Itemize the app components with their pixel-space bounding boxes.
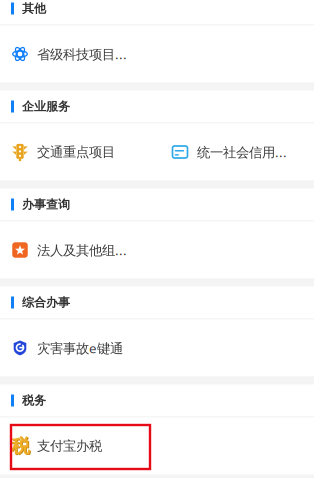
button[interactable]: 省级科技项目...: [0, 25, 314, 82]
staticText: 省级科技项目...: [37, 45, 127, 63]
staticText: 灾害事故e键通: [37, 339, 123, 357]
staticText: 企业服务: [22, 99, 70, 114]
staticText: 办事查询: [22, 197, 70, 212]
staticText: 法人及其他组...: [37, 241, 127, 259]
button[interactable]: 统一社会信用...: [160, 123, 314, 180]
button[interactable]: 灾害事故e键通: [0, 319, 314, 376]
staticText: 综合办事: [22, 295, 70, 310]
staticText: 税: [12, 435, 31, 458]
staticText: 税: [11, 434, 30, 457]
button[interactable]: 交通重点项目: [0, 123, 160, 180]
staticText: 交通重点项目: [37, 144, 115, 160]
staticText: 税务: [22, 393, 46, 408]
button[interactable]: 税: [0, 417, 314, 474]
staticText: 其他: [22, 1, 46, 16]
button[interactable]: 法人及其他组...: [0, 221, 314, 278]
staticText: 统一社会信用...: [197, 143, 287, 161]
staticText: 支付宝办税: [37, 438, 102, 454]
